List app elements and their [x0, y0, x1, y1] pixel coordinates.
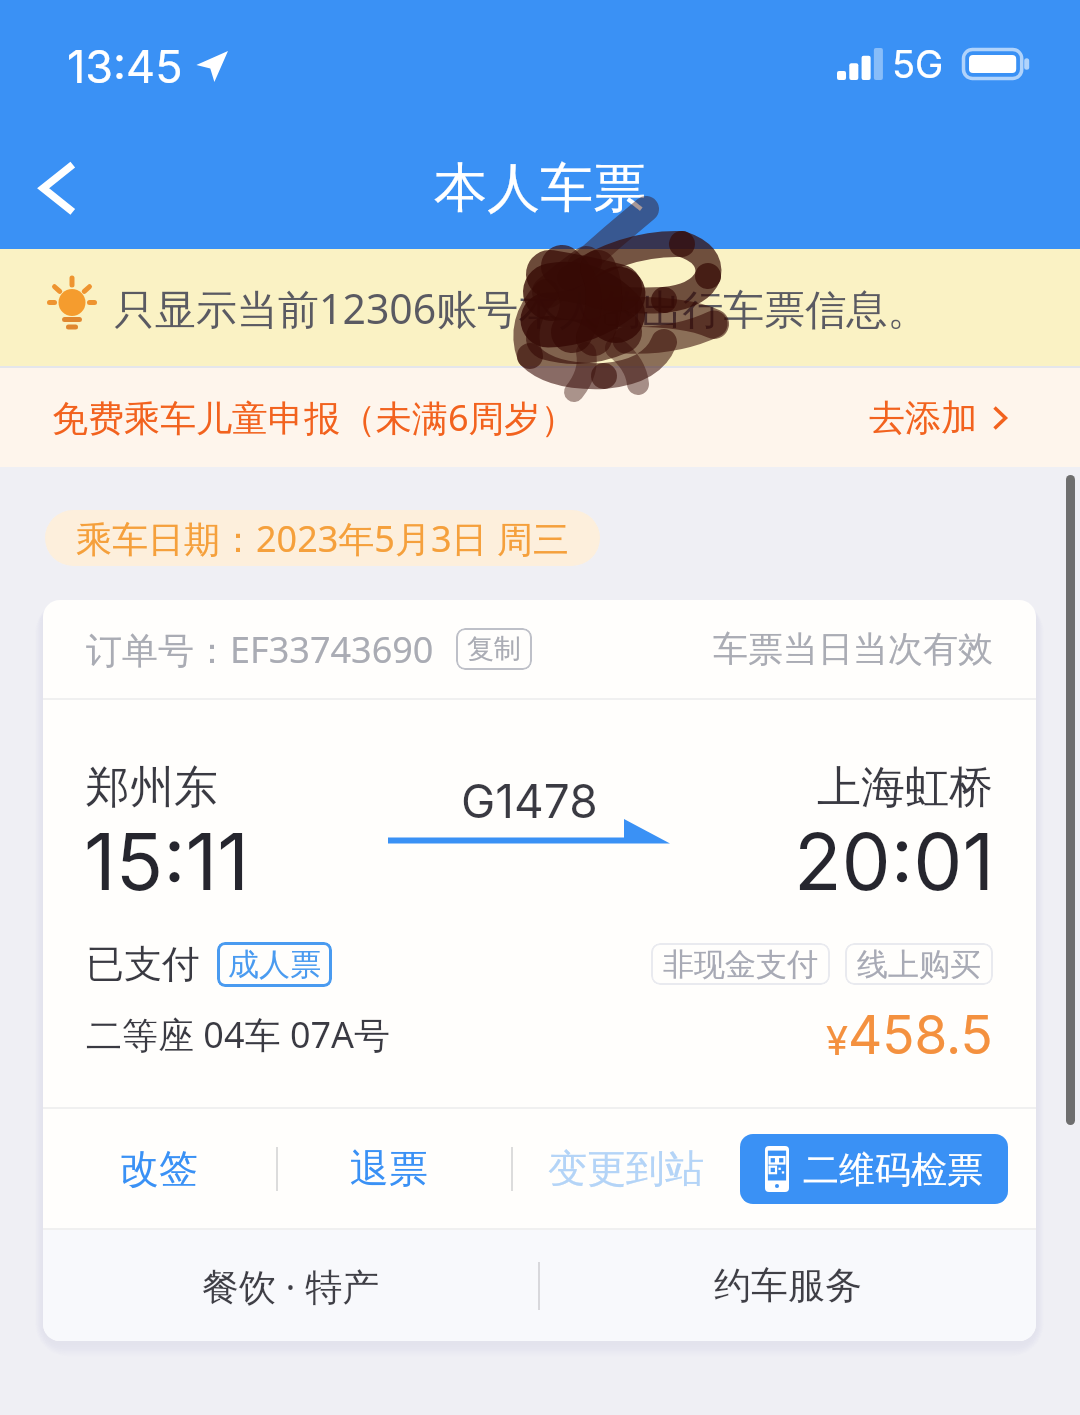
staticText: 退票 — [350, 1144, 428, 1193]
staticText: 成人票 — [228, 945, 321, 984]
button[interactable]: Back — [10, 150, 96, 236]
staticText: 上海虹桥 — [817, 760, 993, 815]
button[interactable]: 改签 — [90, 1128, 228, 1209]
button[interactable]: 餐饮 · 特产 — [43, 1230, 538, 1341]
staticText: G1478 — [461, 773, 598, 829]
staticText: 458.5 — [848, 1003, 993, 1067]
button[interactable]: 免费乘车儿童申报（未满6周岁） — [0, 368, 1080, 467]
staticText: 郑州东 — [86, 760, 218, 815]
staticText: 已支付 — [86, 940, 200, 988]
staticText: 5G — [892, 41, 944, 87]
staticText: 非现金支付 — [663, 945, 818, 984]
staticText: 免费乘车儿童申报（未满6周岁） — [52, 393, 577, 442]
staticText: ¥ — [826, 1016, 848, 1064]
staticText: 去添加 — [869, 395, 977, 440]
staticText: 餐饮 · 特产 — [202, 1260, 380, 1311]
button[interactable]: 复制 — [456, 628, 532, 670]
staticText: 13:45 — [67, 39, 183, 93]
staticText: 二等座 04车 07A号 — [86, 1010, 391, 1059]
staticText: 变更到站 — [548, 1144, 704, 1193]
staticText: 线上购买 — [857, 945, 981, 984]
staticText: 二维码检票 — [803, 1147, 983, 1192]
staticText: 乘车日期：2023年5月3日 周三 — [76, 514, 569, 563]
staticText: 只显示当前12306账号本人的出行车票信息。 — [114, 280, 929, 336]
staticText: 复制 — [467, 632, 521, 666]
staticText: 本人车票 — [434, 155, 646, 222]
staticText: 20:01 — [794, 814, 995, 908]
button[interactable]: 二维码检票 — [740, 1134, 1008, 1204]
staticText: 订单号：EF33743690 — [86, 625, 434, 674]
staticText: 车票当日当次有效 — [713, 627, 993, 671]
staticText: 约车服务 — [714, 1262, 862, 1309]
staticText: 15:11 — [84, 814, 250, 908]
button[interactable]: 约车服务 — [540, 1230, 1036, 1341]
button[interactable]: 退票 — [320, 1128, 458, 1209]
staticText: 改签 — [120, 1144, 198, 1193]
